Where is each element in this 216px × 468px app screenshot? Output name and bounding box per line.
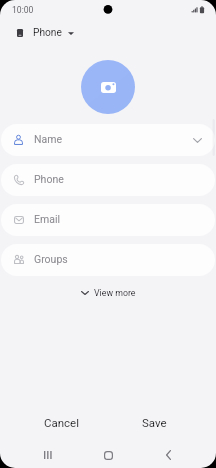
button[interactable]: Name (1, 124, 215, 156)
button[interactable]: View more (75, 286, 142, 302)
staticText: Save (142, 416, 167, 429)
staticText: Phone (33, 27, 62, 39)
staticText: Name (34, 133, 62, 145)
button[interactable]: Save (108, 408, 201, 436)
staticText: Cancel (44, 416, 80, 429)
button[interactable]: Cancel (15, 408, 108, 436)
button[interactable]: Home (78, 442, 138, 468)
button[interactable]: Add photo (81, 60, 135, 114)
staticText: Phone (34, 173, 64, 185)
button[interactable]: Phone (0, 25, 84, 41)
button[interactable]: Recent apps (18, 442, 78, 468)
staticText: Groups (34, 253, 68, 265)
button[interactable]: Email (1, 204, 215, 236)
button[interactable]: Groups (1, 244, 215, 276)
staticText: View more (94, 288, 136, 298)
staticText: 10:00 (12, 5, 34, 15)
button[interactable]: Back (138, 442, 198, 468)
staticText: Email (34, 213, 60, 225)
button[interactable]: Phone (1, 164, 215, 196)
